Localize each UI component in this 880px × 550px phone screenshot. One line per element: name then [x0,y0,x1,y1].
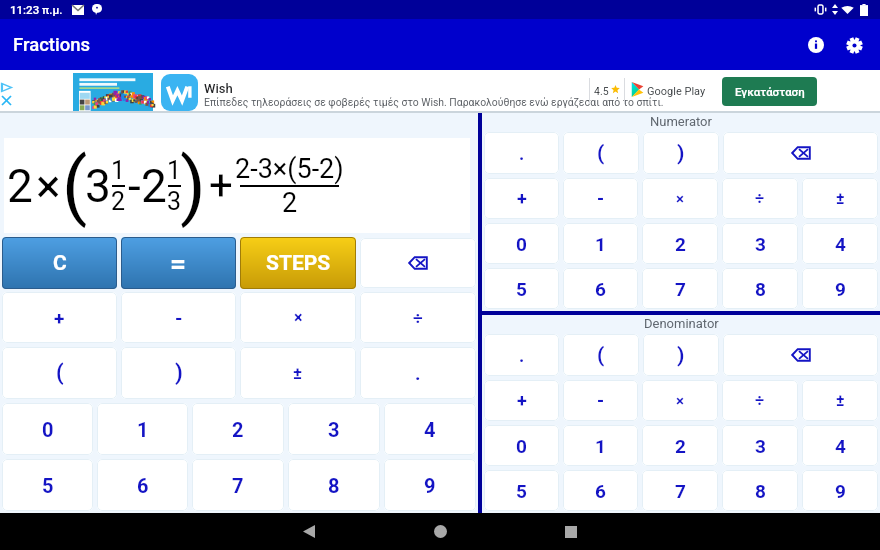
button[interactable]: + [484,178,559,219]
button[interactable]: 3 [722,425,798,466]
button[interactable]: 2 [192,403,284,455]
button[interactable]: 5 [2,459,93,511]
button[interactable]: 0 [2,403,93,455]
staticText: ÷ [413,308,423,328]
button[interactable]: - [121,292,236,343]
button[interactable]: × [642,380,718,421]
button[interactable]: ( [2,347,117,399]
staticText: ± [836,189,845,208]
button[interactable]: 2 [642,223,718,264]
staticText: 8 [755,278,766,300]
button[interactable]: Settings [837,28,871,62]
staticText: ) [677,343,685,368]
button[interactable]: 9 [802,268,878,309]
button[interactable]: 1 [563,425,638,466]
button[interactable]: 8 [722,268,798,309]
staticText: 4 [835,233,846,255]
staticText: 5 [516,278,527,300]
button[interactable]: 4 [802,425,878,466]
staticText: . [415,362,421,384]
button[interactable]: 7 [642,268,718,309]
button[interactable]: + [484,380,559,421]
staticText: 6 [595,480,606,502]
staticText: Google Play [647,85,706,98]
button[interactable]: 6 [563,268,638,309]
staticText: ± [836,391,845,410]
staticText: + [517,188,527,209]
staticText: 2-3×(5-2) [235,153,344,185]
staticText: 1 [137,418,149,441]
button[interactable]: . [484,334,559,376]
staticText: 11:23 π.μ. [10,3,63,16]
button[interactable]: 8 [288,459,380,511]
staticText: 1 [111,156,126,185]
button[interactable]: ± [240,347,356,399]
button[interactable]: - [563,380,638,421]
button[interactable]: ± [802,178,878,219]
button[interactable]: ) [643,132,719,174]
staticText: ( [56,360,64,386]
staticText: 4.5 [594,85,609,97]
button[interactable]: . [360,347,476,399]
button[interactable]: ÷ [722,380,798,421]
button[interactable]: + [2,292,117,343]
button[interactable]: ± [802,380,878,421]
button[interactable]: 3 [722,223,798,264]
staticText: + [54,307,65,329]
button[interactable]: ) [643,334,719,376]
button[interactable]: Back [289,513,329,550]
staticText: Denominator [644,316,719,331]
staticText: 4 [424,418,436,441]
staticText: 3 [755,233,766,255]
staticText: 8 [328,474,340,497]
button[interactable]: Backspace [360,238,476,288]
button[interactable]: × [642,178,718,219]
button[interactable]: 7 [192,459,284,511]
button[interactable]: 5 [484,470,559,511]
button[interactable]: Backspace [723,334,878,376]
button[interactable]: Εγκατάσταση [722,77,817,106]
button[interactable]: 5 [484,268,559,309]
button[interactable]: 0 [484,223,559,264]
staticText: - [597,390,605,411]
staticText: + [517,390,527,411]
staticText: 3 [167,187,182,216]
button[interactable]: - [563,178,638,219]
button[interactable]: Info [799,28,833,62]
button[interactable]: . [484,132,559,174]
button[interactable]: ÷ [360,292,476,343]
staticText: ( [597,343,605,368]
button[interactable]: ) [121,347,236,399]
button[interactable]: 8 [722,470,798,511]
staticText: 9 [424,474,436,497]
button[interactable]: Backspace [723,132,878,174]
button[interactable]: Recents [551,513,591,550]
button[interactable]: 0 [484,425,559,466]
button[interactable]: × [240,292,356,343]
button[interactable]: 1 [563,223,638,264]
button[interactable]: 6 [563,470,638,511]
button[interactable]: Home [420,513,460,550]
button[interactable]: 6 [97,459,188,511]
staticText: Fractions [13,34,90,56]
button[interactable]: = [121,237,236,289]
staticText: . [519,143,525,164]
staticText: Εγκατάσταση [735,85,805,98]
staticText: Επίπεδες τηλεοράσεις σε φοβερές τιμές στ… [204,96,664,108]
button[interactable]: ÷ [722,178,798,219]
staticText: + [209,161,233,210]
button[interactable]: 4 [384,403,476,455]
button[interactable]: 2 [642,425,718,466]
button[interactable]: 9 [802,470,878,511]
button[interactable]: 3 [288,403,380,455]
button[interactable]: 9 [384,459,476,511]
staticText: 2 [111,187,126,216]
button[interactable]: ( [563,132,639,174]
button[interactable]: 4 [802,223,878,264]
button[interactable]: STEPS [240,237,356,289]
button[interactable]: ( [563,334,639,376]
button[interactable]: 7 [642,470,718,511]
staticText: - [597,188,605,209]
button[interactable]: C [2,237,117,289]
button[interactable]: 1 [97,403,188,455]
